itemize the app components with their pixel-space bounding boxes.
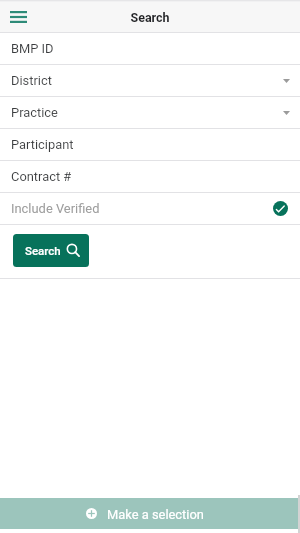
- button[interactable]: District: [0, 65, 300, 97]
- staticText: Search: [130, 10, 170, 25]
- staticText: BMP ID: [11, 41, 54, 56]
- staticText: Contract #: [11, 169, 72, 184]
- staticText: Include Verified: [11, 201, 100, 216]
- staticText: District: [11, 73, 52, 88]
- staticText: Make a selection: [107, 507, 204, 522]
- button[interactable]: Open navigation menu: [5, 3, 32, 30]
- button[interactable]: BMP ID: [0, 33, 300, 65]
- button[interactable]: Participant: [0, 129, 300, 161]
- button[interactable]: Make a selection: [0, 498, 300, 529]
- button[interactable]: Practice: [0, 97, 300, 129]
- staticText: Participant: [11, 137, 74, 152]
- staticText: Practice: [11, 105, 58, 120]
- staticText: Search: [25, 244, 61, 257]
- button[interactable]: Contract #: [0, 161, 300, 193]
- button[interactable]: Search: [13, 234, 89, 267]
- button[interactable]: Include Verified: [0, 193, 300, 225]
